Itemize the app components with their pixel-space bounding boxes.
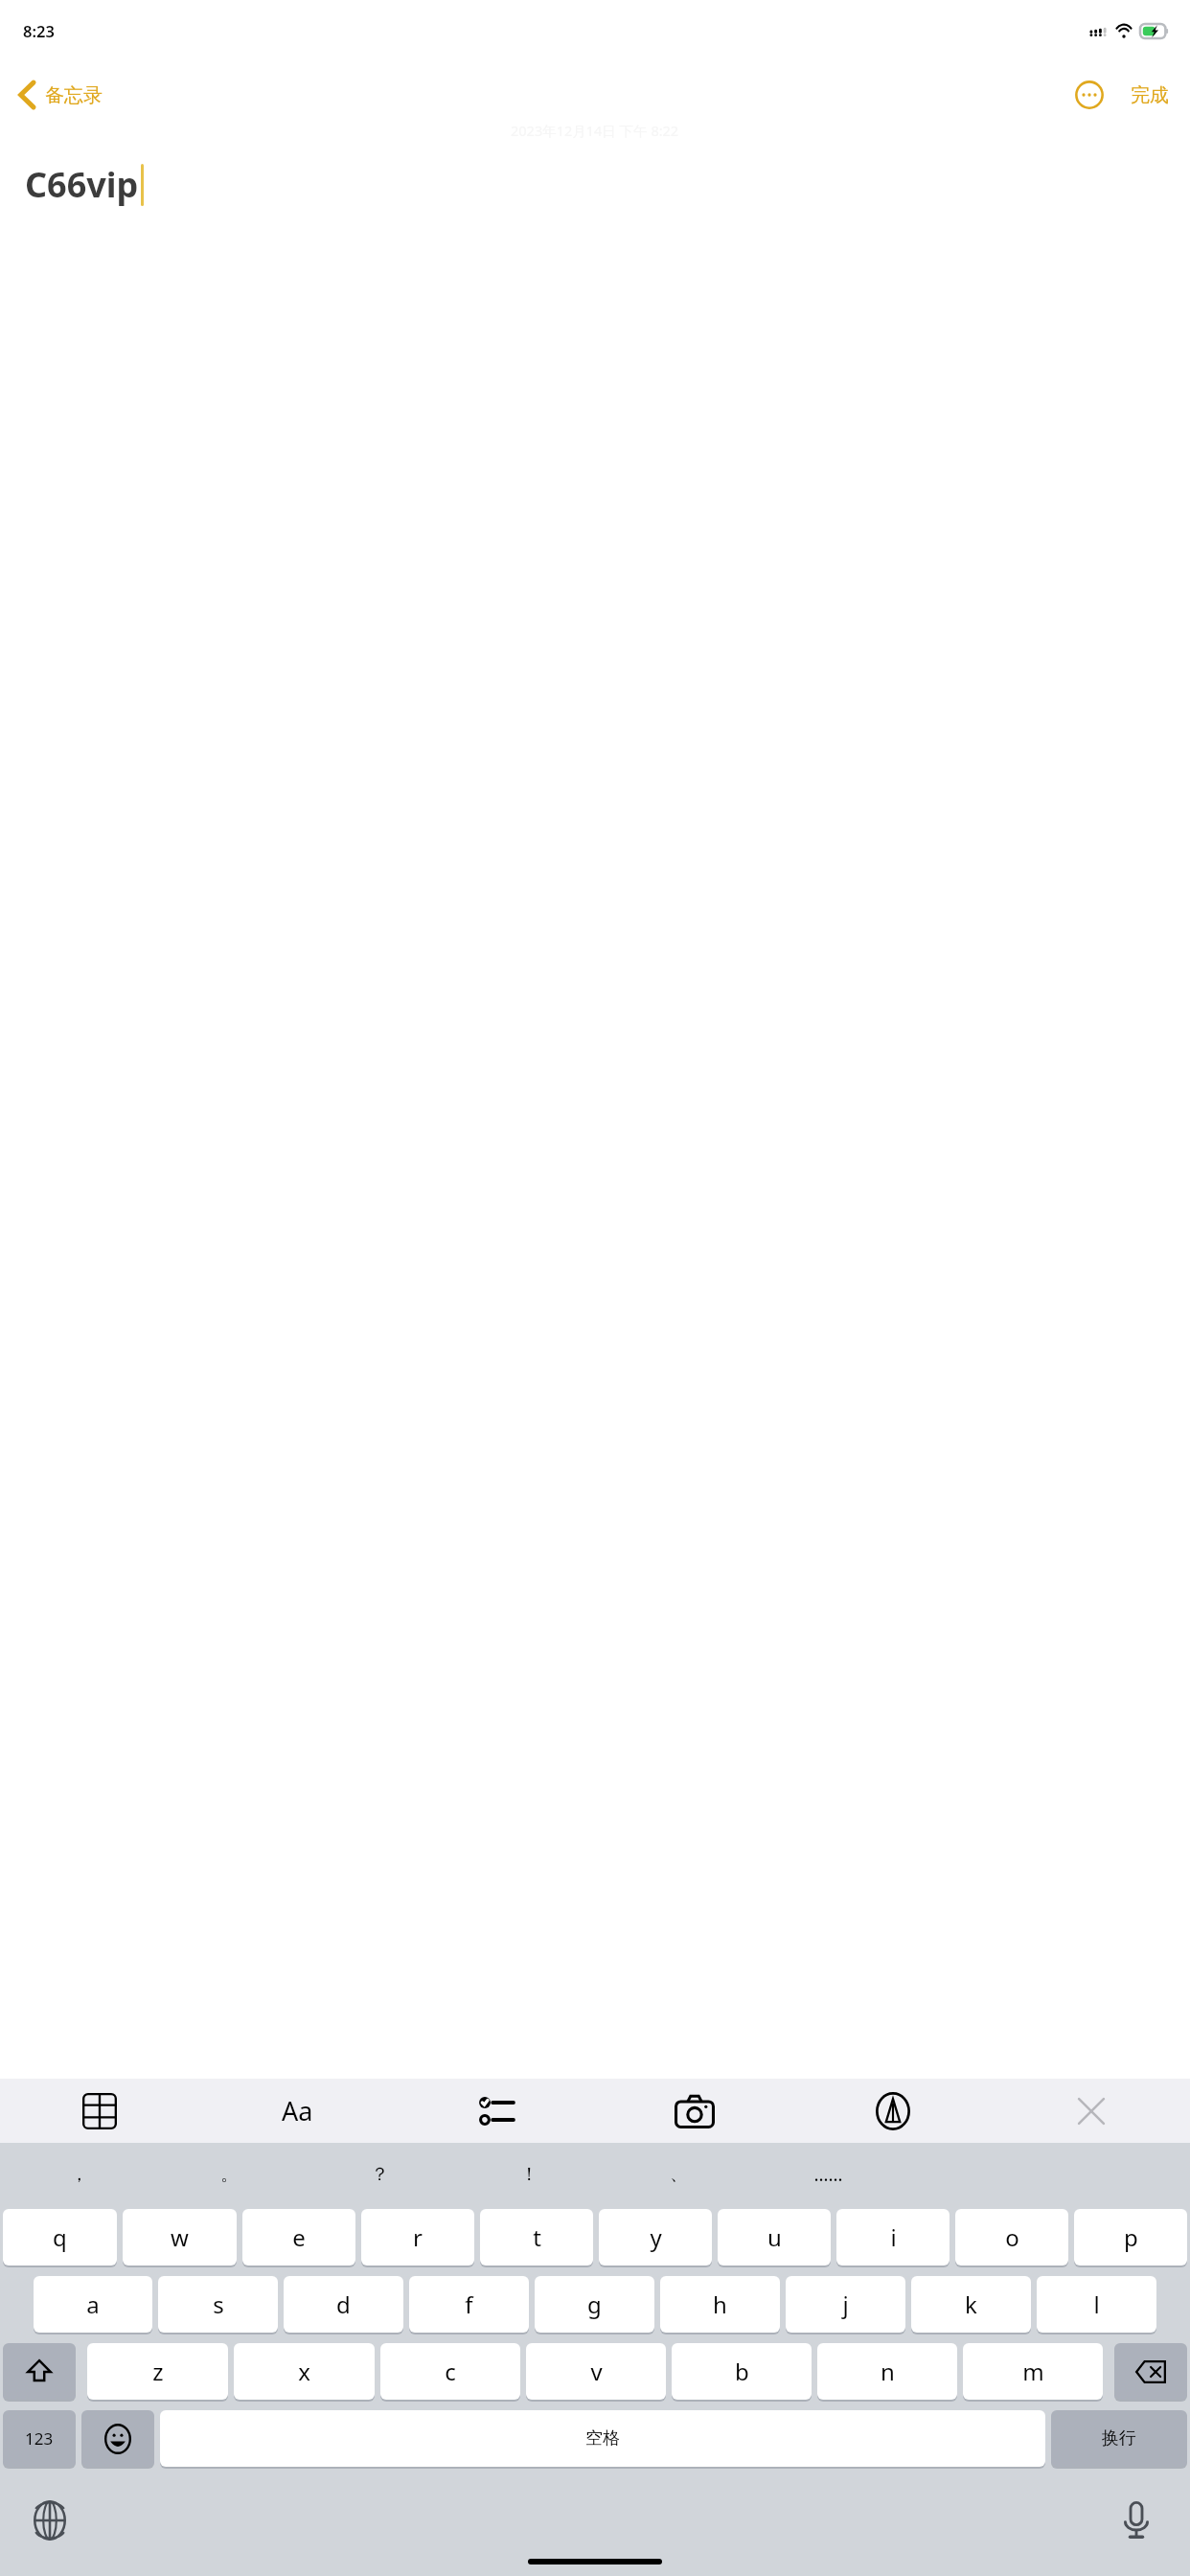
staticText: …… — [813, 2162, 843, 2187]
button[interactable]: l — [1037, 2276, 1156, 2333]
staticText: o — [1005, 2221, 1019, 2253]
button[interactable]: 123 — [3, 2410, 76, 2467]
staticText: p — [1124, 2221, 1138, 2253]
button[interactable]: Close — [992, 2079, 1190, 2143]
staticText: s — [213, 2288, 224, 2320]
staticText: 。 — [220, 2163, 239, 2186]
staticText: x — [298, 2356, 310, 2387]
button[interactable]: g — [535, 2276, 654, 2333]
staticText: 空格 — [585, 2427, 620, 2449]
button[interactable]: p — [1074, 2209, 1187, 2265]
staticText: l — [1093, 2288, 1100, 2320]
button[interactable]: c — [380, 2343, 520, 2400]
button[interactable]: Checklist — [397, 2079, 595, 2143]
staticText: d — [336, 2288, 351, 2320]
staticText: 、 — [670, 2163, 688, 2186]
staticText: u — [767, 2221, 782, 2253]
staticText: 2023年12月14日 下午 8:22 — [511, 121, 679, 140]
button[interactable]: y — [599, 2209, 712, 2265]
button[interactable]: 空格 — [160, 2410, 1045, 2467]
button[interactable]: 。 — [154, 2143, 305, 2205]
staticText: 8:23 — [23, 20, 55, 41]
staticText: 完成 — [1131, 83, 1169, 107]
button[interactable]: h — [660, 2276, 780, 2333]
button[interactable]: ， — [4, 2143, 154, 2205]
button[interactable]: ？ — [305, 2143, 454, 2205]
button[interactable]: …… — [753, 2143, 903, 2205]
button[interactable]: Dictation — [1108, 2492, 1165, 2549]
staticText: j — [842, 2288, 849, 2320]
staticText: 备忘录 — [45, 83, 103, 107]
button[interactable]: w — [123, 2209, 237, 2265]
staticText: m — [1022, 2356, 1044, 2387]
button[interactable]: a — [34, 2276, 152, 2333]
staticText: 123 — [25, 2427, 54, 2449]
staticText: e — [292, 2221, 306, 2253]
staticText: v — [590, 2356, 603, 2387]
staticText: y — [650, 2221, 662, 2253]
staticText: q — [53, 2221, 67, 2253]
staticText: a — [86, 2288, 100, 2320]
staticText: c — [445, 2356, 456, 2387]
button[interactable]: Insert table — [0, 2079, 198, 2143]
staticText: n — [881, 2356, 895, 2387]
staticText: f — [465, 2288, 473, 2320]
button[interactable]: f — [409, 2276, 529, 2333]
staticText: 换行 — [1102, 2427, 1136, 2449]
staticText: h — [713, 2288, 727, 2320]
staticText: k — [965, 2288, 977, 2320]
button[interactable]: More options — [1067, 73, 1111, 117]
button[interactable]: s — [158, 2276, 278, 2333]
button[interactable]: x — [234, 2343, 375, 2400]
staticText: ！ — [520, 2163, 538, 2186]
button[interactable]: Markup — [793, 2079, 992, 2143]
staticText: t — [533, 2221, 541, 2253]
staticText: ， — [70, 2163, 88, 2186]
button[interactable]: n — [817, 2343, 957, 2400]
button[interactable]: Change keyboard — [21, 2492, 79, 2549]
button[interactable]: j — [786, 2276, 905, 2333]
button[interactable]: v — [526, 2343, 666, 2400]
button[interactable]: r — [361, 2209, 474, 2265]
button[interactable]: 完成 — [1127, 78, 1173, 113]
staticText: i — [890, 2221, 897, 2253]
button[interactable]: Backspace — [1114, 2343, 1187, 2400]
staticText: z — [152, 2356, 164, 2387]
staticText: C66vip — [25, 161, 139, 208]
staticText: ？ — [371, 2163, 389, 2186]
button[interactable]: 换行 — [1051, 2410, 1187, 2467]
button[interactable]: Shift — [3, 2343, 76, 2400]
button[interactable]: ！ — [454, 2143, 604, 2205]
button[interactable]: d — [284, 2276, 403, 2333]
button[interactable]: o — [955, 2209, 1068, 2265]
button[interactable]: k — [911, 2276, 1031, 2333]
button[interactable]: e — [242, 2209, 355, 2265]
button[interactable]: 备忘录 — [0, 75, 114, 115]
button[interactable]: z — [87, 2343, 228, 2400]
button[interactable]: 、 — [604, 2143, 753, 2205]
button[interactable]: t — [480, 2209, 593, 2265]
button[interactable]: Camera — [595, 2079, 793, 2143]
button[interactable]: b — [672, 2343, 812, 2400]
button[interactable]: Format text — [198, 2079, 397, 2143]
button[interactable]: i — [836, 2209, 950, 2265]
staticText: w — [171, 2221, 189, 2253]
button[interactable]: m — [963, 2343, 1103, 2400]
button[interactable]: u — [718, 2209, 831, 2265]
staticText: b — [735, 2356, 749, 2387]
staticText: r — [413, 2221, 423, 2253]
button[interactable]: Emoji — [81, 2410, 154, 2467]
button[interactable]: q — [3, 2209, 117, 2265]
staticText: Aa — [282, 2093, 313, 2128]
staticText: g — [587, 2288, 602, 2320]
